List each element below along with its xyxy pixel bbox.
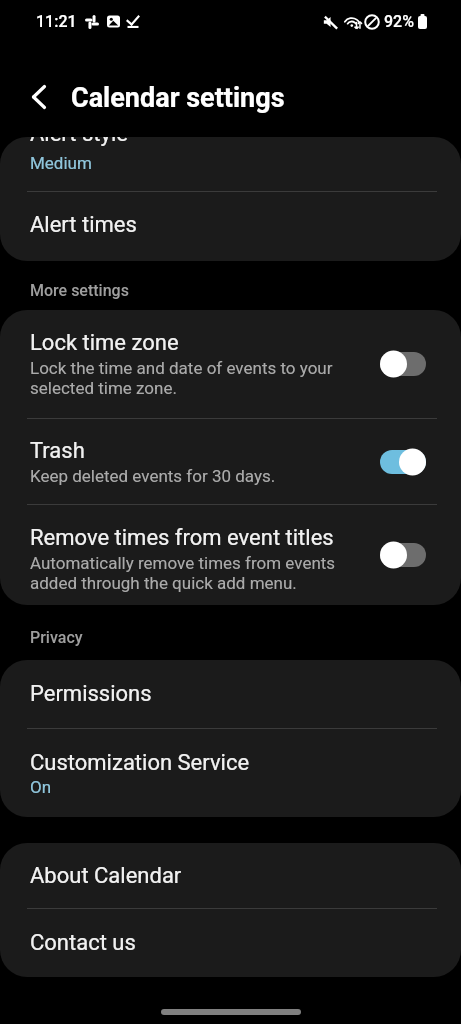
staticText: About Calendar (30, 863, 182, 889)
staticText: Remove times from event titles (30, 525, 334, 551)
staticText: Alert times (30, 212, 137, 238)
staticText: Privacy (30, 628, 83, 647)
button[interactable]: Permissions (0, 660, 461, 728)
button[interactable]: About Calendar (0, 843, 461, 908)
button[interactable]: Remove times from event titles (0, 505, 461, 605)
staticText: Permissions (30, 681, 152, 707)
staticText: Trash (30, 438, 85, 464)
staticText: Lock time zone (30, 330, 179, 356)
staticText: On (30, 777, 52, 797)
staticText: Contact us (30, 930, 136, 956)
staticText: 11:21 (36, 12, 77, 31)
staticText: Keep deleted events for 30 days. (30, 466, 276, 486)
button[interactable]: Lock time zone (0, 310, 461, 418)
staticText: Customization Service (30, 750, 250, 776)
staticText: Alert style (30, 137, 128, 147)
staticText: 92% (384, 12, 414, 31)
staticText: Medium (30, 153, 92, 173)
staticText: Lock the time and date of events to your… (30, 358, 333, 398)
button[interactable]: Contact us (0, 909, 461, 977)
staticText: More settings (30, 281, 129, 300)
button[interactable]: Customization Service (0, 729, 461, 817)
button[interactable]: Alert style (0, 137, 461, 191)
button[interactable]: Trash (0, 419, 461, 504)
staticText: Automatically remove times from events a… (30, 553, 336, 593)
staticText: Calendar settings (71, 82, 285, 114)
button[interactable]: Alert times (0, 192, 461, 261)
button[interactable]: Back (16, 74, 62, 120)
